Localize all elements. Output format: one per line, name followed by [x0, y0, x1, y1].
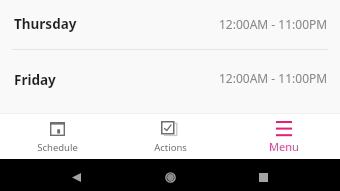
- staticText: 12:00AM - 11:00PM: [219, 16, 328, 32]
- button[interactable]: Actions: [114, 114, 227, 154]
- button[interactable]: Menu: [227, 114, 340, 154]
- staticText: Thursday: [14, 15, 77, 33]
- button[interactable]: Recents: [249, 164, 278, 191]
- button[interactable]: Friday: [0, 50, 340, 108]
- staticText: Actions: [154, 141, 187, 154]
- staticText: 12:00AM - 11:00PM: [219, 70, 328, 86]
- button[interactable]: Back: [62, 164, 91, 191]
- button[interactable]: Home: [156, 164, 185, 191]
- staticText: Friday: [14, 71, 56, 89]
- staticText: Schedule: [37, 141, 78, 154]
- button[interactable]: Schedule: [0, 114, 114, 154]
- staticText: Menu: [269, 139, 299, 154]
- button[interactable]: Thursday: [0, 0, 340, 50]
